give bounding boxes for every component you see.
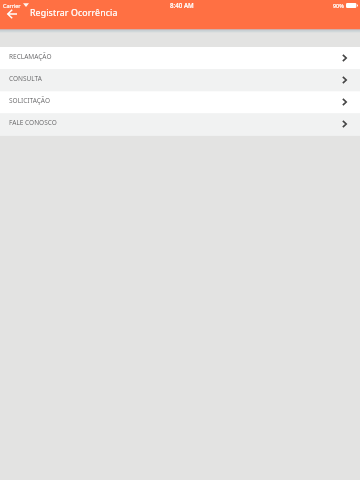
staticText: Carrier — [3, 2, 21, 9]
staticText: FALE CONOSCO — [9, 118, 57, 127]
staticText: Registrar Ocorrência — [30, 7, 118, 19]
button[interactable]: CONSULTA — [0, 69, 360, 91]
staticText: SOLICITAÇÃO — [9, 96, 50, 105]
staticText: CONSULTA — [9, 74, 42, 83]
button[interactable]: Back — [3, 5, 20, 22]
button[interactable]: SOLICITAÇÃO — [0, 91, 360, 113]
staticText: RECLAMAÇÃO — [9, 52, 52, 61]
button[interactable]: FALE CONOSCO — [0, 113, 360, 135]
button[interactable]: RECLAMAÇÃO — [0, 47, 360, 69]
staticText: 90% — [333, 2, 344, 9]
staticText: 8:40 AM — [170, 1, 194, 9]
